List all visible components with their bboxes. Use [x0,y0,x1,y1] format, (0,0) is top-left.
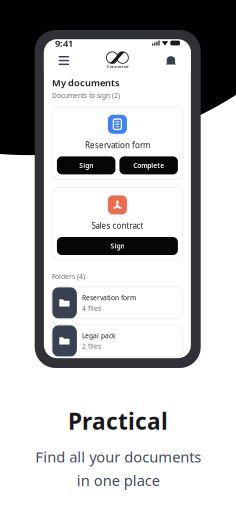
staticText: 9:41 [55,37,73,49]
staticText: Reservation form [82,293,136,302]
staticText: Reservation form [85,140,150,150]
button[interactable]: Sign [57,237,178,255]
staticText: Find all your documents in one place [35,447,201,490]
staticText: Sales contract [91,220,143,231]
staticText: 2 files [82,342,101,350]
button[interactable]: Reservation form [52,287,183,319]
button[interactable]: Menu [52,50,76,70]
staticText: Complete [133,161,164,170]
staticText: Practical [68,406,168,436]
button[interactable]: Legal pack [52,325,183,357]
button[interactable]: Complete [119,156,178,174]
staticText: 4 files [82,304,101,312]
staticText: Sign [79,161,93,170]
staticText: Folders (4) [52,272,85,281]
staticText: Connected [107,64,128,69]
staticText: My documents [52,76,120,89]
button[interactable]: Notifications [159,50,183,70]
staticText: Documents to sign (2) [52,91,120,100]
staticText: Legal pack [82,331,116,340]
button[interactable]: Sign [57,156,115,174]
staticText: Sign [110,242,124,250]
